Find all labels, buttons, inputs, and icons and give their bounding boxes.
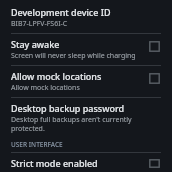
- other: Toggle setting checkbox: [149, 159, 160, 168]
- staticText: Allow mock locations: [11, 70, 102, 82]
- staticText: Screen will never sleep while charging: [11, 51, 136, 61]
- other: Toggle setting checkbox: [149, 41, 160, 52]
- button[interactable]: Toggle setting checkbox: [148, 72, 161, 85]
- button[interactable]: Strict mode enabled: [0, 153, 172, 172]
- button[interactable]: Allow mock locations: [0, 66, 172, 97]
- staticText: Strict mode enabled: [11, 157, 98, 168]
- button[interactable]: Toggle setting checkbox: [148, 159, 161, 168]
- staticText: Development device ID: [11, 6, 111, 18]
- staticText: Desktop full backups aren't currently pr…: [11, 115, 161, 133]
- button[interactable]: Toggle setting checkbox: [148, 40, 161, 53]
- button[interactable]: Desktop backup password: [0, 98, 172, 137]
- button[interactable]: Development device ID: [0, 5, 172, 33]
- button[interactable]: Stay awake: [0, 34, 172, 65]
- staticText: Stay awake: [11, 38, 60, 50]
- staticText: Desktop backup password: [11, 102, 125, 114]
- other: Toggle setting checkbox: [149, 73, 160, 84]
- staticText: BIB7-LPFV-FS6I-C: [11, 19, 68, 29]
- staticText: Allow mock locations: [11, 83, 80, 93]
- staticText: USER INTERFACE: [11, 140, 63, 149]
